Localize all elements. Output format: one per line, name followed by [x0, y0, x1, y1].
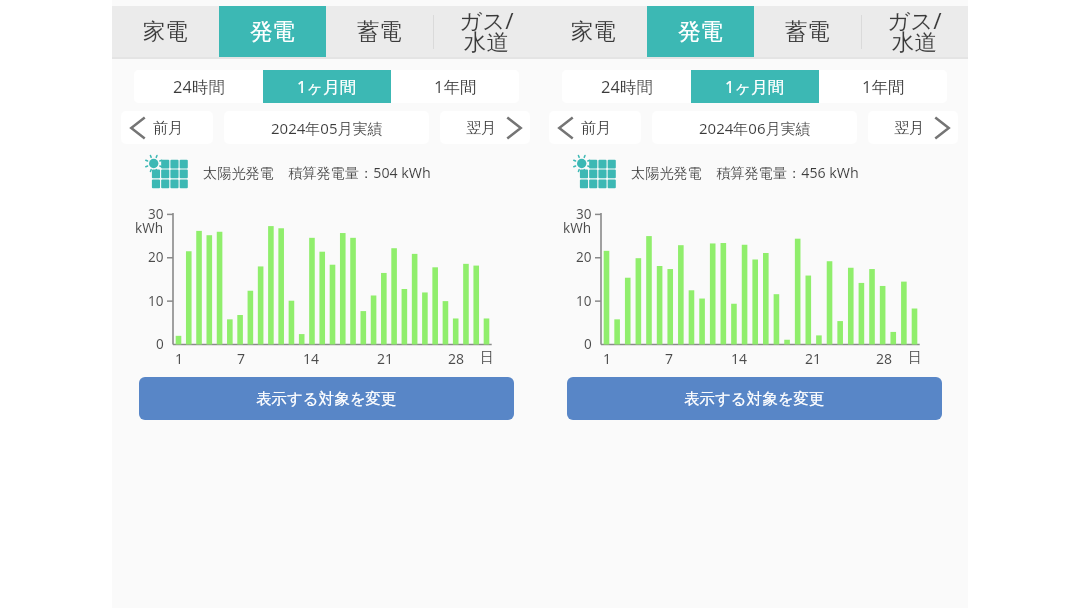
- button[interactable]: 表示する対象を変更: [139, 377, 514, 420]
- staticText: 7: [665, 349, 674, 367]
- staticText: 30: [148, 205, 164, 223]
- staticText: 1年間: [862, 75, 905, 98]
- staticText: 翌月: [894, 119, 924, 138]
- staticText: 24時間: [173, 75, 225, 98]
- button[interactable]: ガス/ 水道: [861, 6, 968, 58]
- button[interactable]: 1年間: [391, 70, 519, 103]
- staticText: 家電: [143, 17, 188, 45]
- staticText: 1: [603, 349, 612, 367]
- staticText: 21: [805, 349, 822, 367]
- button[interactable]: 1ヶ月間: [691, 70, 819, 103]
- button[interactable]: 24時間: [134, 70, 263, 103]
- button[interactable]: 発電: [219, 6, 326, 58]
- button[interactable]: 発電: [647, 6, 754, 58]
- staticText: 10: [576, 292, 592, 310]
- staticText: 24時間: [601, 75, 653, 98]
- button[interactable]: 翌月: [868, 111, 958, 144]
- staticText: kWh: [135, 219, 164, 237]
- staticText: ガス/ 水道: [459, 5, 514, 56]
- staticText: 表示する対象を変更: [684, 389, 825, 409]
- staticText: kWh: [563, 219, 592, 237]
- staticText: 家電: [571, 17, 616, 45]
- button[interactable]: 前月: [121, 111, 213, 144]
- staticText: 2024年05月実績: [271, 118, 383, 138]
- button[interactable]: 表示する対象を変更: [567, 377, 942, 420]
- button[interactable]: 翌月: [440, 111, 530, 144]
- staticText: 蓄電: [785, 17, 830, 45]
- button[interactable]: 蓄電: [326, 6, 433, 58]
- button[interactable]: 1年間: [819, 70, 947, 103]
- staticText: 1: [175, 349, 184, 367]
- staticText: 28: [448, 349, 465, 367]
- staticText: 20: [576, 248, 592, 266]
- staticText: 14: [731, 349, 748, 367]
- staticText: 28: [876, 349, 893, 367]
- staticText: 1年間: [434, 75, 477, 98]
- staticText: 20: [148, 248, 164, 266]
- staticText: 前月: [153, 119, 183, 138]
- button[interactable]: 家電: [540, 6, 647, 58]
- staticText: 1ヶ月間: [725, 75, 785, 98]
- staticText: 発電: [678, 17, 723, 45]
- staticText: 2024年06月実績: [699, 118, 811, 138]
- button[interactable]: 24時間: [562, 70, 691, 103]
- staticText: 1ヶ月間: [297, 75, 357, 98]
- button[interactable]: 家電: [112, 6, 219, 58]
- staticText: 翌月: [466, 119, 496, 138]
- staticText: 7: [237, 349, 246, 367]
- staticText: 表示する対象を変更: [256, 389, 397, 409]
- button[interactable]: ガス/ 水道: [433, 6, 540, 58]
- staticText: 前月: [581, 119, 611, 138]
- staticText: 21: [377, 349, 394, 367]
- button[interactable]: 蓄電: [754, 6, 861, 58]
- staticText: 太陽光発電 積算発電量：456 kWh: [631, 163, 859, 182]
- staticText: 太陽光発電 積算発電量：504 kWh: [203, 163, 431, 182]
- staticText: 0: [584, 335, 592, 353]
- staticText: 10: [148, 292, 164, 310]
- staticText: 日: [480, 349, 494, 367]
- staticText: 発電: [250, 17, 295, 45]
- button[interactable]: 前月: [549, 111, 641, 144]
- staticText: 蓄電: [357, 17, 402, 45]
- staticText: 0: [156, 335, 164, 353]
- button[interactable]: 2024年06月実績: [652, 111, 857, 144]
- button[interactable]: 2024年05月実績: [224, 111, 429, 144]
- button[interactable]: 1ヶ月間: [263, 70, 391, 103]
- staticText: ガス/ 水道: [887, 5, 942, 56]
- staticText: 14: [303, 349, 320, 367]
- staticText: 日: [908, 349, 922, 367]
- staticText: 30: [576, 205, 592, 223]
